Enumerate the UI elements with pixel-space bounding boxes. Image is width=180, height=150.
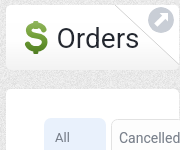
button[interactable]: Open orders [148, 7, 174, 33]
button[interactable] [6, 5, 179, 70]
button[interactable] [44, 118, 106, 150]
button[interactable] [111, 119, 180, 150]
